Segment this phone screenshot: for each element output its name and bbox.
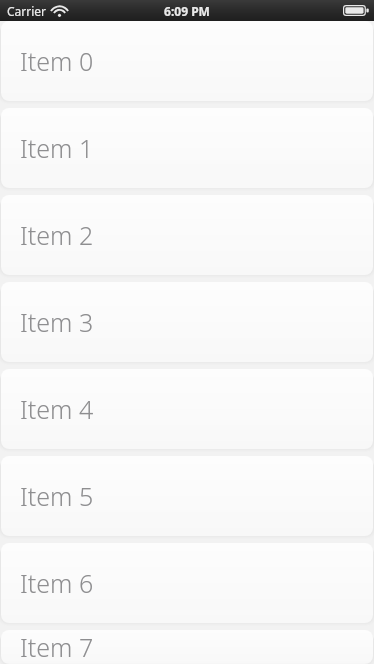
button[interactable]: Item 5 [0, 456, 374, 536]
button[interactable]: Item 3 [0, 282, 374, 362]
staticText: Item 4 [20, 392, 94, 426]
button[interactable]: Item 4 [0, 369, 374, 449]
staticText: Item 1 [20, 131, 94, 165]
staticText: 6:09 PM [164, 3, 210, 19]
button[interactable]: Item 7 [0, 630, 374, 664]
staticText: Carrier [7, 3, 47, 19]
staticText: Item 2 [20, 218, 94, 252]
button[interactable]: Item 1 [0, 108, 374, 188]
staticText: Item 7 [20, 630, 94, 664]
staticText: Item 0 [20, 44, 94, 78]
button[interactable]: Item 0 [0, 21, 374, 101]
button[interactable]: Item 6 [0, 543, 374, 623]
staticText: Item 3 [20, 305, 94, 339]
staticText: Item 6 [20, 566, 94, 600]
staticText: Item 5 [20, 479, 94, 513]
button[interactable]: Item 2 [0, 195, 374, 275]
